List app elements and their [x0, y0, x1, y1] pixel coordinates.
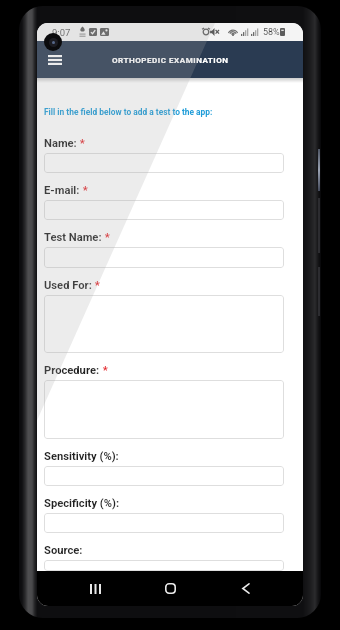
staticText: *	[92, 279, 100, 292]
staticText: E-mail:	[44, 184, 80, 197]
button[interactable]	[44, 200, 284, 220]
button[interactable]	[44, 380, 284, 439]
staticText: *	[100, 364, 108, 377]
staticText: Fill in the field below to add a test to…	[44, 107, 213, 117]
staticText: Source:	[44, 544, 83, 557]
staticText: *	[102, 231, 110, 244]
staticText: Procedure:	[44, 364, 100, 377]
button[interactable]	[44, 295, 284, 353]
staticText: *	[80, 184, 88, 197]
staticText: Name:	[44, 137, 77, 150]
button[interactable]: Menu	[41, 46, 68, 73]
staticText: Specificity (%):	[44, 497, 120, 510]
button[interactable]: Home	[155, 573, 186, 604]
staticText: 9:07	[52, 27, 71, 38]
button[interactable]	[44, 466, 284, 486]
button[interactable]	[44, 560, 284, 571]
staticText: Used For:	[44, 279, 92, 292]
button[interactable]	[44, 247, 284, 268]
button[interactable]: Recents	[80, 573, 111, 604]
staticText: Sensitivity (%):	[44, 450, 119, 463]
staticText: 58%	[263, 27, 280, 38]
staticText: *	[77, 137, 85, 150]
button[interactable]: Back	[230, 573, 261, 604]
staticText: ORTHOPEDIC EXAMINATION	[112, 55, 229, 64]
staticText: Test Name:	[44, 231, 102, 244]
button[interactable]	[44, 513, 284, 533]
button[interactable]	[44, 153, 284, 173]
